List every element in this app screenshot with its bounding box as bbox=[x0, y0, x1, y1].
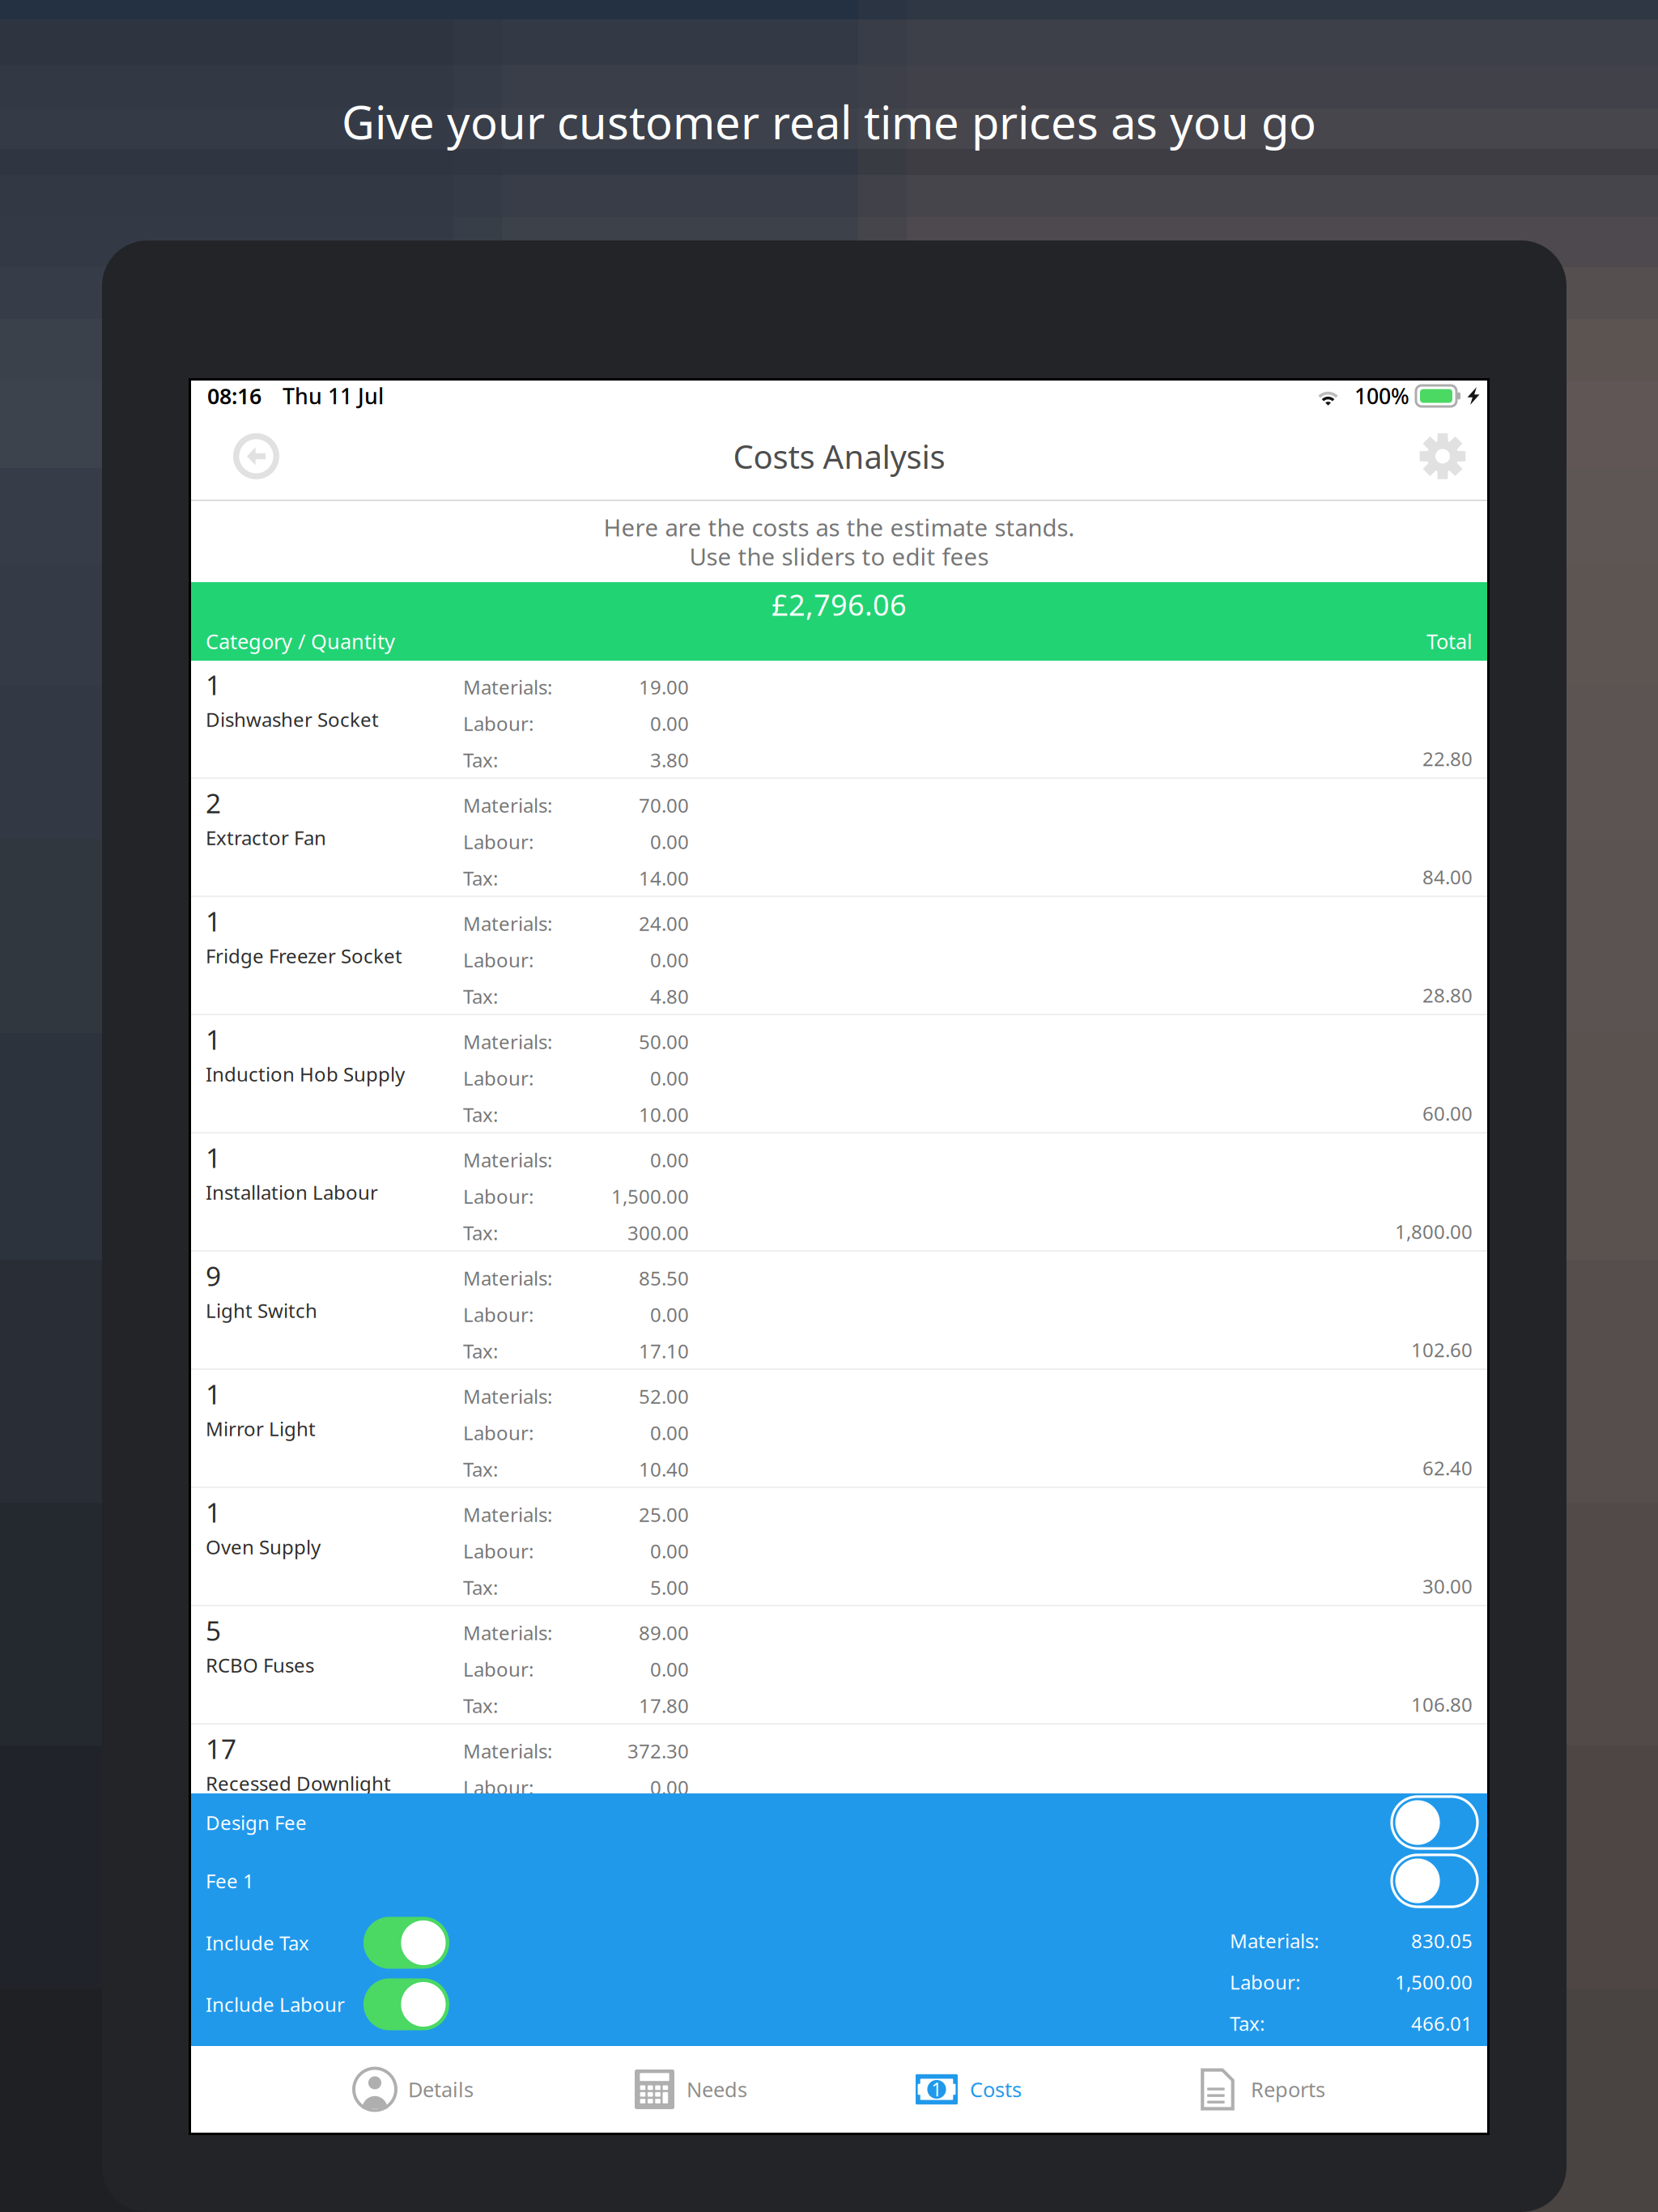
staticText: Tax: bbox=[1230, 2010, 1265, 2036]
staticText: Mirror Light bbox=[206, 1416, 316, 1442]
staticText: Labour: bbox=[463, 829, 534, 855]
staticText: Category / Quantity bbox=[206, 628, 395, 655]
staticText: 89.00 bbox=[639, 1620, 689, 1646]
staticText: Total bbox=[1426, 628, 1473, 655]
staticText: 1 bbox=[206, 1376, 221, 1412]
staticText: RCBO Fuses bbox=[206, 1652, 314, 1678]
staticText: 17.10 bbox=[639, 1338, 689, 1364]
staticText: Recessed Downlight bbox=[206, 1770, 391, 1796]
button[interactable]: 1 bbox=[916, 2046, 1197, 2133]
staticText: 0.00 bbox=[650, 1065, 689, 1091]
staticText: Use the sliders to edit fees bbox=[689, 540, 989, 572]
staticText: 100% bbox=[1354, 382, 1409, 410]
staticText: Materials: bbox=[463, 674, 552, 700]
staticText: Labour: bbox=[463, 711, 534, 736]
staticText: Thu 11 Jul bbox=[283, 382, 384, 410]
staticText: 0.00 bbox=[650, 1656, 689, 1682]
staticText: Needs bbox=[687, 2076, 747, 2103]
staticText: 19.00 bbox=[639, 674, 689, 700]
staticText: Labour: bbox=[1230, 1969, 1300, 1995]
staticText: 372.30 bbox=[627, 1738, 689, 1764]
staticText: Tax: bbox=[463, 1456, 498, 1482]
staticText: Materials: bbox=[463, 1147, 552, 1173]
staticText: Tax: bbox=[463, 1693, 498, 1719]
staticText: Here are the costs as the estimate stand… bbox=[604, 511, 1075, 543]
staticText: 4.80 bbox=[650, 983, 689, 1009]
button[interactable]: Details bbox=[354, 2046, 635, 2133]
staticText: Labour: bbox=[463, 947, 534, 973]
staticText: Give your customer real time prices as y… bbox=[342, 91, 1316, 152]
staticText: Materials: bbox=[463, 792, 552, 818]
staticText: 5.00 bbox=[650, 1574, 689, 1600]
staticText: 10.40 bbox=[639, 1456, 689, 1482]
staticText: 1 bbox=[206, 1140, 221, 1175]
staticText: 60.00 bbox=[1422, 1100, 1473, 1126]
staticText: Extractor Fan bbox=[206, 825, 326, 851]
staticText: 1,800.00 bbox=[1395, 1219, 1473, 1244]
staticText: Tax: bbox=[463, 747, 498, 773]
staticText: 106.80 bbox=[1411, 1691, 1473, 1717]
staticText: Tax: bbox=[463, 1220, 498, 1246]
staticText: Dishwasher Socket bbox=[206, 707, 379, 732]
staticText: 1 bbox=[206, 903, 221, 939]
staticText: 85.50 bbox=[639, 1265, 689, 1291]
staticText: Materials: bbox=[463, 1502, 552, 1527]
staticText: Labour: bbox=[463, 1183, 534, 1209]
staticText: 70.00 bbox=[639, 792, 689, 818]
staticText: Tax: bbox=[463, 983, 498, 1009]
staticText: 0.00 bbox=[650, 1302, 689, 1327]
staticText: Include Tax bbox=[206, 1930, 309, 1956]
staticText: Materials: bbox=[463, 911, 552, 936]
staticText: 102.60 bbox=[1411, 1337, 1473, 1363]
staticText: Materials: bbox=[463, 1738, 552, 1764]
staticText: 830.05 bbox=[1411, 1928, 1473, 1954]
staticText: Costs bbox=[970, 2076, 1022, 2103]
button[interactable]: Reports bbox=[1197, 2046, 1477, 2133]
staticText: 14.00 bbox=[639, 865, 689, 891]
staticText: 08:16 bbox=[207, 382, 261, 410]
staticText: 1 bbox=[931, 2077, 942, 2101]
staticText: 0.00 bbox=[650, 1147, 689, 1173]
staticText: 0.00 bbox=[650, 1774, 689, 1800]
staticText: 62.40 bbox=[1422, 1455, 1473, 1481]
staticText: Tax: bbox=[463, 865, 498, 891]
staticText: Oven Supply bbox=[206, 1534, 321, 1560]
staticText: 1 bbox=[206, 667, 221, 703]
button[interactable]: Include Tax bbox=[206, 1912, 449, 1974]
staticText: 17 bbox=[206, 1731, 236, 1766]
staticText: Labour: bbox=[463, 1065, 534, 1091]
staticText: 1,500.00 bbox=[611, 1183, 689, 1209]
staticText: 52.00 bbox=[639, 1383, 689, 1409]
staticText: 2 bbox=[206, 785, 221, 821]
button[interactable]: Needs bbox=[635, 2046, 916, 2133]
staticText: Include Labour bbox=[206, 1991, 345, 2017]
staticText: Costs Analysis bbox=[733, 435, 945, 478]
staticText: Induction Hob Supply bbox=[206, 1061, 405, 1087]
staticText: 0.00 bbox=[650, 1420, 689, 1446]
staticText: 50.00 bbox=[639, 1029, 689, 1055]
staticText: Labour: bbox=[463, 1774, 534, 1800]
staticText: 466.01 bbox=[1411, 2010, 1473, 2036]
staticText: 9 bbox=[206, 1258, 221, 1294]
staticText: Labour: bbox=[463, 1656, 534, 1682]
staticText: 22.80 bbox=[1422, 746, 1473, 772]
button[interactable]: Back bbox=[225, 425, 287, 487]
staticText: Materials: bbox=[463, 1620, 552, 1646]
staticText: Fee 1 bbox=[206, 1868, 254, 1894]
staticText: 17.80 bbox=[639, 1693, 689, 1719]
staticText: Installation Labour bbox=[206, 1179, 378, 1205]
button[interactable]: Settings bbox=[1411, 425, 1474, 488]
staticText: 3.80 bbox=[650, 747, 689, 773]
button[interactable]: Include Labour bbox=[206, 1974, 449, 2035]
staticText: Materials: bbox=[463, 1029, 552, 1055]
button[interactable]: Fee 1 bbox=[191, 1852, 1487, 1910]
staticText: Materials: bbox=[1230, 1928, 1319, 1954]
staticText: 84.00 bbox=[1422, 864, 1473, 890]
staticText: Reports bbox=[1251, 2076, 1325, 2103]
button[interactable]: Design Fee bbox=[191, 1793, 1487, 1852]
staticText: Materials: bbox=[463, 1383, 552, 1409]
staticText: 300.00 bbox=[627, 1220, 689, 1246]
staticText: Tax: bbox=[463, 1338, 498, 1364]
